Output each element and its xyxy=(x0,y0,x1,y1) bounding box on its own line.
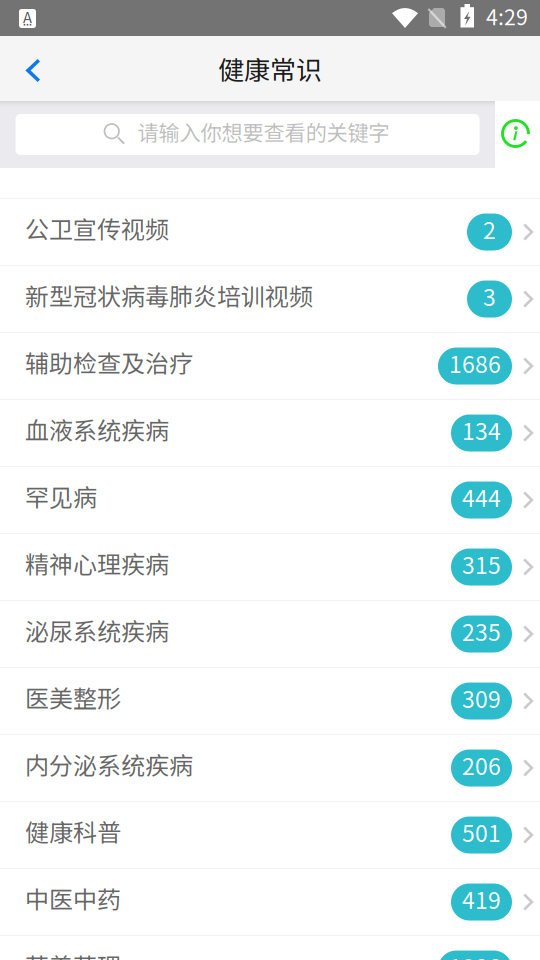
staticText: 1686 xyxy=(449,346,501,380)
staticText: 公卫宣传视频 xyxy=(25,211,169,245)
staticText: 新型冠状病毒肺炎培训视频 xyxy=(25,278,313,312)
staticText: 134 xyxy=(462,413,501,447)
button[interactable]: Back xyxy=(0,36,62,101)
staticText: 中医中药 xyxy=(25,881,121,915)
staticText: 235 xyxy=(462,614,501,648)
staticText: 3 xyxy=(483,279,496,313)
staticText: 健康常识 xyxy=(218,50,322,87)
button[interactable]: 精神心理疾病 xyxy=(0,533,540,600)
staticText: 罕见病 xyxy=(25,479,97,513)
button[interactable]: 健康科普 xyxy=(0,801,540,868)
staticText: 2 xyxy=(483,212,496,246)
button[interactable]: 请输入你想要查看的关键字 xyxy=(0,101,495,168)
staticText: 精神心理疾病 xyxy=(25,546,169,580)
staticText: 医美整形 xyxy=(25,680,121,714)
staticText: A xyxy=(23,6,32,27)
staticText: 206 xyxy=(462,748,501,782)
staticText: 444 xyxy=(462,480,501,514)
button[interactable]: 辅助检查及治疗 xyxy=(0,332,540,399)
staticText: 营养药理 xyxy=(25,948,121,960)
button[interactable]: 罕见病 xyxy=(0,466,540,533)
staticText: 309 xyxy=(462,681,501,715)
button[interactable]: 营养药理 xyxy=(0,935,540,960)
staticText: 419 xyxy=(462,882,501,916)
button[interactable]: Info xyxy=(495,101,540,168)
staticText: 315 xyxy=(462,547,501,581)
staticText: 4:29 xyxy=(486,1,528,31)
button[interactable]: 中医中药 xyxy=(0,868,540,935)
staticText: 泌尿系统疾病 xyxy=(25,613,169,647)
staticText: 1086 xyxy=(449,949,501,960)
staticText: 501 xyxy=(462,815,501,849)
button[interactable]: 公卫宣传视频 xyxy=(0,198,540,265)
button[interactable]: 医美整形 xyxy=(0,667,540,734)
staticText: 辅助检查及治疗 xyxy=(25,345,193,379)
button[interactable]: 泌尿系统疾病 xyxy=(0,600,540,667)
staticText: 血液系统疾病 xyxy=(25,412,169,446)
button[interactable]: 血液系统疾病 xyxy=(0,399,540,466)
button[interactable]: 内分泌系统疾病 xyxy=(0,734,540,801)
staticText: 健康科普 xyxy=(25,814,121,848)
button[interactable]: 新型冠状病毒肺炎培训视频 xyxy=(0,265,540,332)
staticText: 请输入你想要查看的关键字 xyxy=(137,116,389,147)
staticText: 内分泌系统疾病 xyxy=(25,747,193,781)
